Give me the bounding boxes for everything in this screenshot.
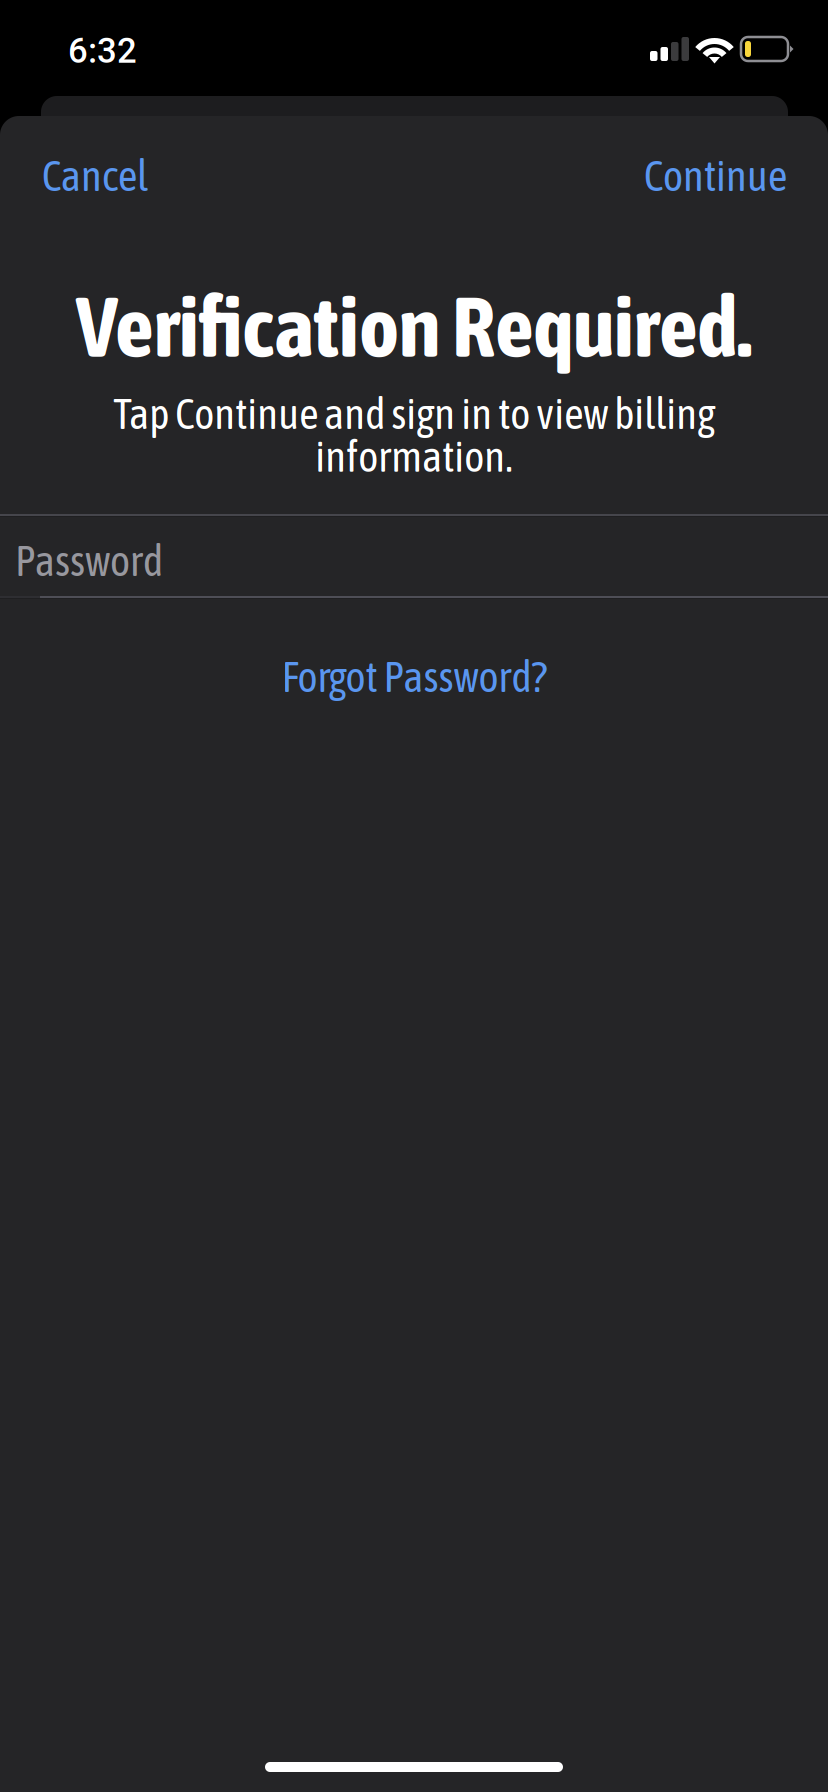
staticText: Continue [644, 151, 787, 200]
button[interactable]: Forgot Password? [1, 652, 827, 701]
staticText: 6:32 [68, 31, 137, 71]
staticText: Password [15, 536, 163, 585]
staticText: Forgot Password? [281, 652, 546, 701]
staticText: Cancel [42, 151, 148, 200]
staticText: Tap Continue and sign in to view billing… [113, 389, 715, 481]
button[interactable]: Cancel [1, 151, 172, 200]
button[interactable]: Continue [620, 151, 827, 200]
staticText: Verification Required. [76, 277, 752, 375]
